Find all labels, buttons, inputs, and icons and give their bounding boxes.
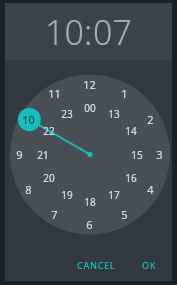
staticText: 11 (48, 86, 61, 101)
staticText: 6 (86, 217, 93, 232)
staticText: 14 (125, 124, 137, 138)
button[interactable]: 12 (78, 73, 101, 96)
button[interactable]: CANCEL (70, 254, 123, 276)
button[interactable]: 21 (32, 144, 53, 165)
button[interactable]: 15 (126, 144, 147, 165)
staticText: : (84, 9, 93, 55)
button[interactable]: 7 (43, 203, 66, 226)
staticText: 8 (25, 182, 32, 197)
button[interactable]: 18 (79, 191, 100, 212)
button[interactable]: 17 (103, 184, 124, 205)
button[interactable]: 10 (17, 108, 40, 131)
staticText: 1 (121, 86, 128, 101)
staticText: 9 (16, 147, 23, 162)
staticText: CANCEL (77, 259, 116, 271)
button[interactable]: 4 (139, 178, 162, 201)
staticText: 18 (84, 195, 96, 209)
button[interactable]: 00 (79, 97, 100, 118)
button[interactable]: 3 (148, 143, 171, 166)
staticText: 21 (37, 148, 49, 162)
staticText: 5 (121, 207, 128, 222)
staticText: 23 (61, 107, 73, 121)
button[interactable]: 13 (103, 103, 124, 124)
button[interactable]: 14 (120, 120, 141, 141)
staticText: 00 (84, 101, 96, 115)
button[interactable]: 07 (93, 9, 132, 55)
button[interactable]: 10 (45, 9, 84, 55)
button[interactable]: 5 (113, 203, 136, 226)
button[interactable]: 22 (38, 120, 59, 141)
button[interactable]: 2 (139, 108, 162, 131)
button[interactable]: 8 (17, 178, 40, 201)
button[interactable]: 9 (8, 143, 31, 166)
button[interactable]: 20 (38, 167, 59, 188)
button[interactable]: 23 (56, 103, 77, 124)
staticText: OK (142, 259, 157, 271)
staticText: 16 (125, 171, 137, 185)
button[interactable]: 6 (78, 213, 101, 236)
staticText: 17 (108, 188, 120, 202)
button[interactable]: 11 (43, 82, 66, 105)
staticText: 3 (156, 147, 163, 162)
staticText: 19 (61, 188, 73, 202)
staticText: 2 (147, 112, 154, 127)
button[interactable]: 19 (56, 184, 77, 205)
staticText: 15 (131, 148, 143, 162)
staticText: 20 (43, 171, 55, 185)
button[interactable]: 1 (113, 82, 136, 105)
staticText: 13 (108, 107, 120, 121)
button[interactable]: 16 (120, 167, 141, 188)
staticText: 4 (147, 182, 154, 197)
staticText: 22 (43, 124, 55, 138)
staticText: 12 (83, 77, 96, 92)
staticText: 7 (51, 207, 58, 222)
staticText: 10 (22, 112, 35, 127)
button[interactable]: OK (135, 254, 164, 276)
